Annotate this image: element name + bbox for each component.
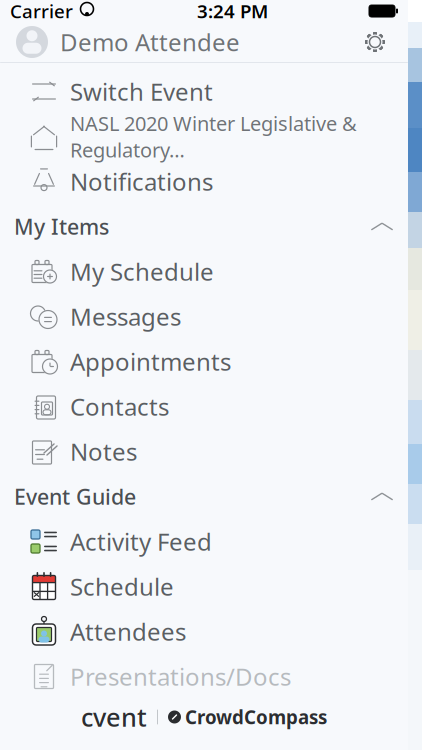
button[interactable]: Notifications — [0, 159, 408, 204]
staticText: NASL 2020 Winter Legislative & Regulator… — [70, 110, 357, 163]
staticText: Event Guide — [14, 482, 136, 511]
staticText: Switch Event — [70, 76, 213, 107]
button[interactable]: My Items — [0, 204, 408, 249]
button[interactable]: NASL 2020 Winter Legislative & Regulator… — [0, 114, 408, 159]
button[interactable]: Activity Feed — [0, 519, 408, 564]
staticText: CrowdCompass — [185, 705, 327, 729]
staticText: Activity Feed — [70, 526, 212, 557]
button[interactable]: Switch Event — [0, 69, 408, 114]
button[interactable]: Messages — [0, 294, 408, 339]
button[interactable]: Appointments — [0, 339, 408, 384]
staticText: Notes — [70, 436, 137, 467]
staticText: Carrier — [10, 0, 73, 23]
staticText: Messages — [70, 301, 181, 332]
staticText: cvent — [81, 700, 147, 734]
staticText: Contacts — [70, 391, 169, 422]
button[interactable]: Presentations/Docs — [0, 654, 408, 699]
button[interactable]: Notes — [0, 429, 408, 474]
staticText: 3:24 PM — [197, 0, 268, 23]
button[interactable]: Schedule — [0, 564, 408, 609]
button[interactable]: Event Guide — [0, 474, 408, 519]
button[interactable]: Demo Attendee — [0, 22, 408, 62]
staticText: Demo Attendee — [60, 26, 240, 58]
staticText: My Schedule — [70, 256, 214, 287]
staticText: My Items — [14, 212, 109, 241]
button[interactable]: Contacts — [0, 384, 408, 429]
staticText: Presentations/Docs — [70, 661, 291, 692]
button[interactable]: My Schedule — [0, 249, 408, 294]
staticText: Attendees — [70, 616, 186, 647]
staticText: Schedule — [70, 571, 174, 602]
staticText: Appointments — [70, 346, 231, 377]
staticText: Notifications — [70, 166, 213, 197]
button[interactable]: Attendees — [0, 609, 408, 654]
